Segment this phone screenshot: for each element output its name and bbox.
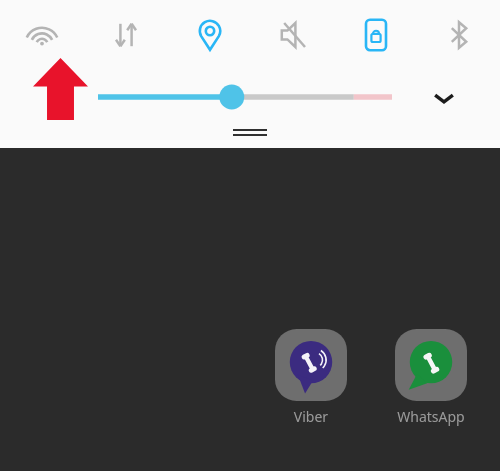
button[interactable]: Mobile data bbox=[84, 0, 168, 70]
button[interactable]: Bluetooth bbox=[417, 0, 500, 70]
button[interactable]: Mute bbox=[251, 0, 334, 70]
button[interactable]: Drag handle bbox=[227, 125, 273, 139]
button[interactable]: Viber bbox=[267, 329, 355, 426]
staticText: Viber bbox=[267, 407, 355, 426]
staticText: WhatsApp bbox=[387, 407, 475, 426]
button[interactable]: Expand quick settings bbox=[418, 78, 470, 118]
button[interactable]: Rotation lock bbox=[334, 0, 417, 70]
button[interactable]: WhatsApp bbox=[387, 329, 475, 426]
button[interactable]: Wi-Fi bbox=[0, 0, 84, 70]
button[interactable] bbox=[90, 80, 402, 114]
button[interactable]: Location bbox=[168, 0, 251, 70]
